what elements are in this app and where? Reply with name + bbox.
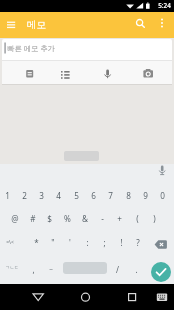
button[interactable] <box>74 287 98 307</box>
button[interactable]: _ <box>44 256 58 278</box>
button[interactable]: 0 <box>154 184 171 206</box>
button[interactable] <box>136 61 160 83</box>
staticText: 빠른 메모 추가 <box>7 43 55 53</box>
staticText: * <box>34 237 39 248</box>
button[interactable]: $ <box>41 207 58 229</box>
staticText: / <box>116 264 119 275</box>
button[interactable]: ? <box>130 231 146 253</box>
button[interactable]: / <box>110 258 124 280</box>
button[interactable]: # <box>24 207 41 229</box>
staticText: # <box>30 213 36 224</box>
staticText: $ <box>47 213 52 224</box>
button[interactable]: 6 <box>85 184 102 206</box>
button[interactable] <box>26 287 50 307</box>
staticText: ; <box>103 237 106 248</box>
staticText: 메모 <box>27 19 46 31</box>
button[interactable] <box>18 61 42 83</box>
button[interactable]: & <box>76 207 93 229</box>
staticText: @ <box>11 213 19 224</box>
staticText: ? <box>136 237 140 248</box>
staticText: " <box>51 237 55 248</box>
button[interactable]: 2 <box>16 184 33 206</box>
staticText: 9 <box>143 190 148 201</box>
button[interactable] <box>2 39 172 84</box>
button[interactable]: , <box>26 258 40 280</box>
button[interactable] <box>151 262 171 282</box>
staticText: ' <box>69 237 71 248</box>
button[interactable]: ! <box>113 231 129 253</box>
button[interactable] <box>53 61 77 83</box>
staticText: 2 <box>22 190 27 201</box>
button[interactable]: 8 <box>120 184 137 206</box>
button[interactable]: 7 <box>102 184 119 206</box>
button[interactable]: ㄱㄴㄷ <box>2 257 22 279</box>
button[interactable] <box>150 233 172 253</box>
staticText: & <box>82 213 88 224</box>
button[interactable]: % <box>59 207 76 229</box>
staticText: ) <box>153 213 156 224</box>
button[interactable]: : <box>79 231 95 253</box>
button[interactable]: ' <box>62 231 78 253</box>
button[interactable]: ) <box>146 207 163 229</box>
staticText: ( <box>136 213 139 224</box>
button[interactable]: . <box>129 258 143 280</box>
button[interactable]: 9 <box>137 184 154 206</box>
button[interactable] <box>132 15 148 33</box>
button[interactable] <box>120 287 144 307</box>
button[interactable] <box>152 287 172 307</box>
staticText: 7 <box>108 190 113 201</box>
staticText: 8 <box>126 190 131 201</box>
staticText: , <box>32 264 35 275</box>
staticText: 4 <box>56 190 61 201</box>
staticText: _ <box>49 262 53 272</box>
staticText: . <box>135 264 138 275</box>
staticText: 1 <box>5 190 10 201</box>
staticText: 5 <box>74 190 79 201</box>
staticText: - <box>101 213 104 224</box>
button[interactable]: " <box>45 231 61 253</box>
button[interactable] <box>3 17 19 33</box>
staticText: ㄱㄴㄷ <box>5 265 19 271</box>
button[interactable]: - <box>94 207 111 229</box>
staticText: : <box>86 237 89 248</box>
button[interactable] <box>95 61 119 83</box>
staticText: 0 <box>160 190 165 201</box>
button[interactable]: ; <box>96 231 112 253</box>
button[interactable]: =\< <box>0 231 20 253</box>
button[interactable]: * <box>28 231 44 253</box>
button[interactable] <box>152 162 172 180</box>
staticText: + <box>117 213 122 224</box>
staticText: ! <box>120 237 123 248</box>
staticText: % <box>64 213 71 224</box>
button[interactable]: + <box>111 207 128 229</box>
button[interactable]: ( <box>129 207 146 229</box>
staticText: 3 <box>39 190 44 201</box>
button[interactable]: 4 <box>50 184 67 206</box>
button[interactable]: @ <box>6 207 23 229</box>
button[interactable]: 1 <box>0 184 16 206</box>
button[interactable]: 5 <box>68 184 85 206</box>
staticText: 5:24 <box>158 1 171 10</box>
staticText: =\< <box>6 239 14 246</box>
button[interactable] <box>155 15 169 33</box>
button[interactable]: 3 <box>33 184 50 206</box>
staticText: 6 <box>91 190 96 201</box>
